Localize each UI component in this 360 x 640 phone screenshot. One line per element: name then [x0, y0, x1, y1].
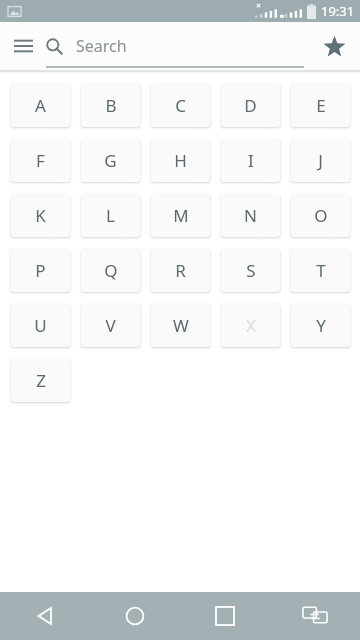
button[interactable]: Q	[81, 249, 140, 292]
staticText: Search	[76, 35, 127, 57]
button[interactable]: Favorites	[308, 22, 360, 70]
button[interactable]: Z	[11, 359, 70, 402]
staticText: K	[35, 204, 46, 227]
button[interactable]: H	[151, 139, 210, 182]
staticText: D	[244, 94, 257, 117]
staticText: O	[314, 204, 328, 227]
button[interactable]: L	[81, 194, 140, 237]
staticText: B	[105, 94, 117, 117]
staticText: W	[173, 314, 189, 337]
staticText: M	[173, 204, 189, 227]
button[interactable]: Home	[90, 592, 180, 640]
staticText: I	[248, 149, 254, 172]
staticText: G	[104, 149, 117, 172]
staticText: V	[105, 314, 116, 337]
staticText: J	[318, 149, 323, 172]
button[interactable]: A	[11, 84, 70, 127]
button[interactable]: F	[11, 139, 70, 182]
button[interactable]: R	[151, 249, 210, 292]
button[interactable]: U	[11, 304, 70, 347]
button[interactable]: N	[221, 194, 280, 237]
button[interactable]: G	[81, 139, 140, 182]
staticText: C	[175, 94, 186, 117]
button[interactable]: S	[221, 249, 280, 292]
button[interactable]: Open navigation menu	[0, 23, 46, 69]
staticText: S	[246, 259, 256, 282]
button[interactable]: Recent apps	[180, 592, 270, 640]
staticText: H	[174, 149, 187, 172]
button[interactable]: J	[291, 139, 350, 182]
button[interactable]: T	[291, 249, 350, 292]
button[interactable]: P	[11, 249, 70, 292]
staticText: Z	[36, 369, 46, 392]
button[interactable]: M	[151, 194, 210, 237]
staticText: U	[34, 314, 47, 337]
button[interactable]: C	[151, 84, 210, 127]
staticText: Q	[104, 259, 118, 282]
button[interactable]: D	[221, 84, 280, 127]
button[interactable]: W	[151, 304, 210, 347]
staticText: R	[175, 259, 186, 282]
button[interactable]: O	[291, 194, 350, 237]
staticText: E	[316, 94, 326, 117]
button[interactable]: I	[221, 139, 280, 182]
staticText: Y	[316, 314, 326, 337]
staticText: A	[35, 94, 46, 117]
staticText: F	[36, 149, 45, 172]
staticText: N	[244, 204, 257, 227]
staticText: X	[246, 314, 256, 337]
button[interactable]: E	[291, 84, 350, 127]
button[interactable]: K	[11, 194, 70, 237]
staticText: P	[35, 259, 46, 282]
staticText: L	[106, 204, 115, 227]
staticText: T	[316, 259, 326, 282]
button[interactable]: Y	[291, 304, 350, 347]
button[interactable]: X	[221, 304, 280, 347]
button[interactable]: B	[81, 84, 140, 127]
button[interactable]: Switch app	[270, 592, 360, 640]
button[interactable]: Search	[46, 24, 308, 68]
button[interactable]: V	[81, 304, 140, 347]
staticText: 19:31	[321, 2, 355, 20]
button[interactable]: Back	[0, 592, 90, 640]
